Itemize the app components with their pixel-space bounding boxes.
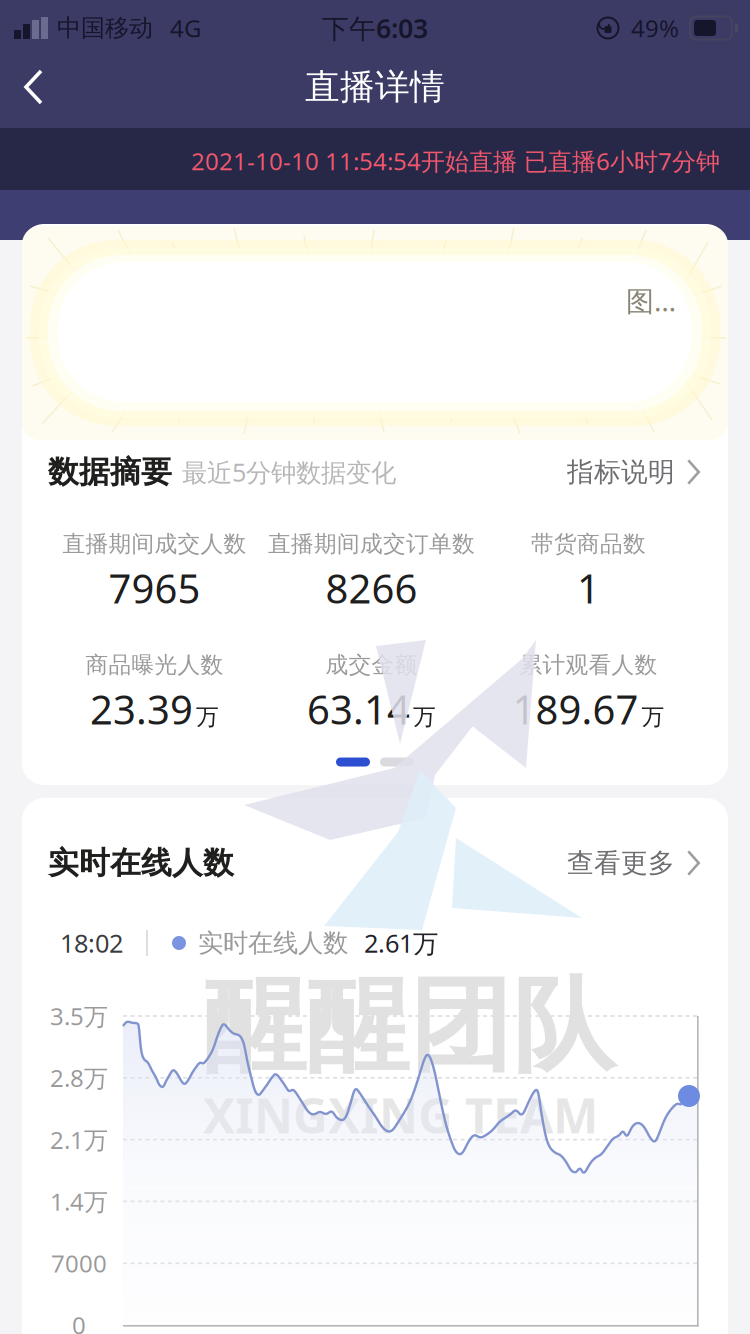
staticText: 8266	[325, 561, 417, 614]
staticText: 0	[72, 1309, 86, 1334]
staticText: 直播期间成交人数	[62, 530, 246, 558]
staticText: 3.5万	[50, 1000, 108, 1032]
staticText: 189.67	[512, 682, 638, 735]
button[interactable]: 指标说明	[567, 456, 700, 488]
staticText: 2.1万	[50, 1124, 108, 1156]
staticText: 下午6:03	[322, 10, 428, 46]
staticText: 实时在线人数	[48, 844, 234, 882]
staticText: 数据摘要	[48, 453, 172, 491]
staticText: 4G	[170, 12, 201, 44]
staticText: 万	[196, 703, 219, 731]
staticText: 万	[641, 703, 664, 731]
staticText: 成交金额	[325, 651, 417, 679]
staticText: 1.4万	[50, 1185, 108, 1217]
staticText: 图…	[626, 282, 676, 319]
staticText: 累计观看人数	[519, 651, 657, 679]
staticText: 23.39	[90, 682, 193, 735]
staticText: 直播期间成交订单数	[268, 530, 475, 558]
staticText: 查看更多	[567, 847, 675, 879]
staticText: 商品曝光人数	[85, 651, 223, 679]
staticText: 7000	[51, 1247, 107, 1279]
staticText: 1	[577, 561, 600, 614]
staticText: XINGXING TEAM	[203, 1083, 598, 1147]
staticText: 18:02	[60, 926, 123, 960]
staticText: 中国移动	[57, 13, 153, 43]
staticText: 2.8万	[50, 1062, 108, 1094]
staticText: 2.61万	[364, 926, 438, 960]
staticText: 2021-10-10 11:54:54开始直播 已直播6小时7分钟	[191, 145, 720, 177]
staticText: 最近5分钟数据变化	[182, 455, 396, 489]
staticText: 49%	[631, 12, 679, 44]
staticText: 63.14	[307, 682, 410, 735]
staticText: 醒醒团队	[203, 963, 615, 1089]
staticText: 7965	[108, 561, 200, 614]
staticText: 指标说明	[567, 456, 675, 488]
staticText: 带货商品数	[531, 530, 646, 558]
button[interactable]: 返回	[0, 54, 61, 120]
staticText: 实时在线人数	[198, 927, 348, 958]
button[interactable]: 查看更多	[567, 847, 700, 879]
staticText: 万	[413, 703, 436, 731]
staticText: 直播详情	[305, 66, 445, 108]
